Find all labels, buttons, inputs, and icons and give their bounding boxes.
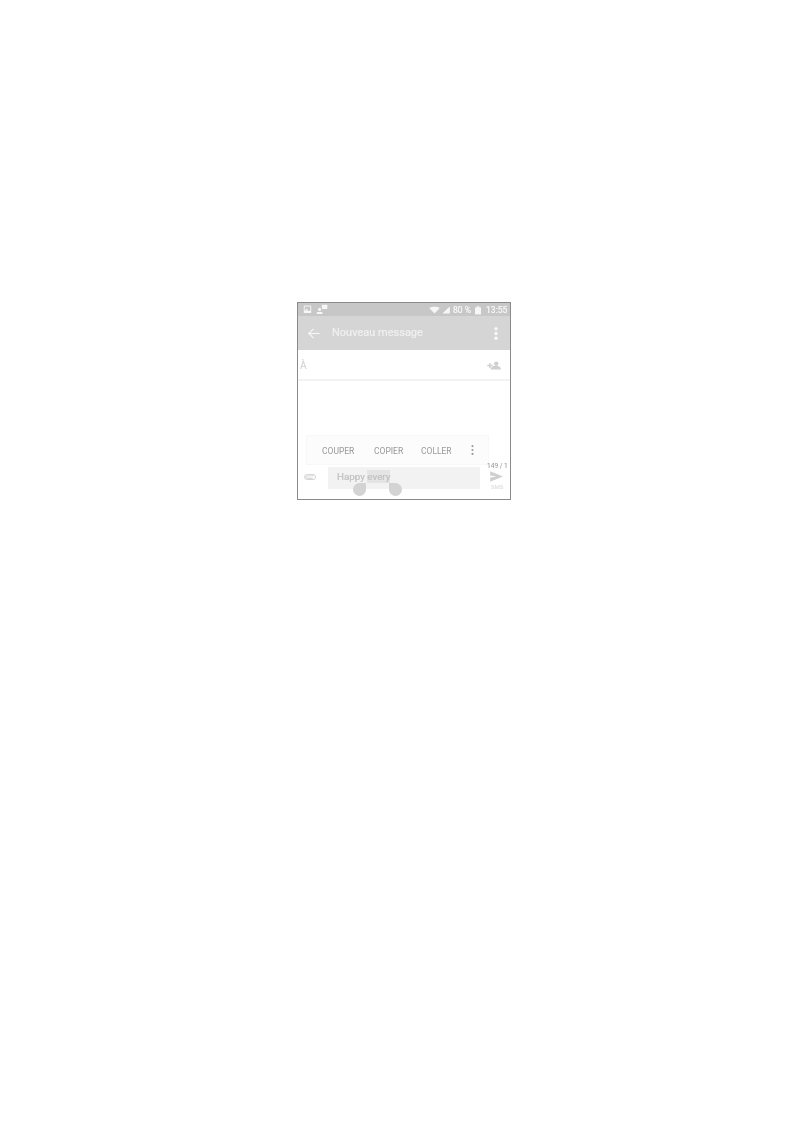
- staticText: SMS: [491, 483, 504, 490]
- button[interactable]: Add contact: [483, 351, 505, 381]
- button[interactable]: More options: [485, 316, 507, 350]
- staticText: 149 / 1: [487, 462, 508, 470]
- button[interactable]: Back: [302, 316, 325, 350]
- staticText: 13:55: [486, 305, 508, 315]
- button[interactable]: Send: [487, 467, 505, 485]
- staticText: COLLER: [421, 446, 452, 456]
- staticText: 80 %: [453, 305, 471, 315]
- button[interactable]: COPIER: [374, 437, 404, 465]
- button[interactable]: COUPER: [322, 437, 355, 465]
- staticText: Nouveau message: [332, 326, 423, 339]
- staticText: À: [300, 360, 307, 372]
- button[interactable]: Attach: [301, 469, 319, 485]
- staticText: Happy every: [337, 471, 391, 482]
- button[interactable]: More: [461, 436, 484, 464]
- button[interactable]: COLLER: [421, 437, 452, 465]
- staticText: COPIER: [374, 446, 404, 456]
- staticText: COUPER: [322, 446, 355, 456]
